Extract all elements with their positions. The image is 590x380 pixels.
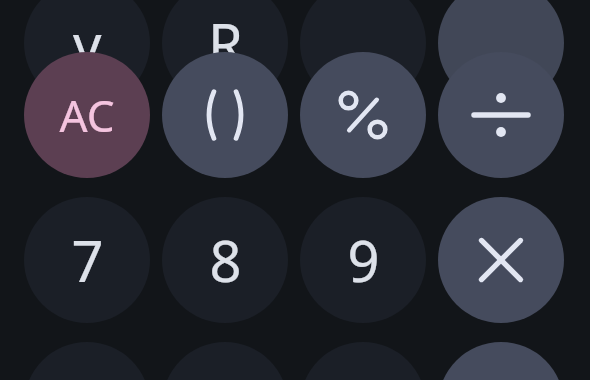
button[interactable]: Multiply xyxy=(438,197,564,323)
button[interactable]: R xyxy=(162,0,288,106)
button[interactable]: Parentheses xyxy=(162,52,288,178)
button[interactable]: Divide xyxy=(438,52,564,178)
button[interactable]: 7 xyxy=(24,197,150,323)
button[interactable]: v xyxy=(24,0,150,106)
button[interactable]: 8 xyxy=(162,197,288,323)
button[interactable]: 6 xyxy=(300,342,426,380)
button[interactable]: 5 xyxy=(162,342,288,380)
staticText: v xyxy=(73,5,102,81)
staticText: AC xyxy=(59,85,115,145)
button[interactable]: Percent xyxy=(300,52,426,178)
staticText: . xyxy=(355,5,371,81)
staticText: 8 xyxy=(209,222,242,298)
button[interactable]: Subtract xyxy=(438,342,564,380)
staticText: R xyxy=(208,5,243,81)
button[interactable]: . xyxy=(300,0,426,106)
staticText: 9 xyxy=(347,222,380,298)
button[interactable]: 9 xyxy=(300,197,426,323)
button[interactable]: AC xyxy=(24,52,150,178)
button[interactable]: 4 xyxy=(24,342,150,380)
button[interactable]: Equals xyxy=(438,0,564,106)
staticText: 7 xyxy=(71,222,104,298)
